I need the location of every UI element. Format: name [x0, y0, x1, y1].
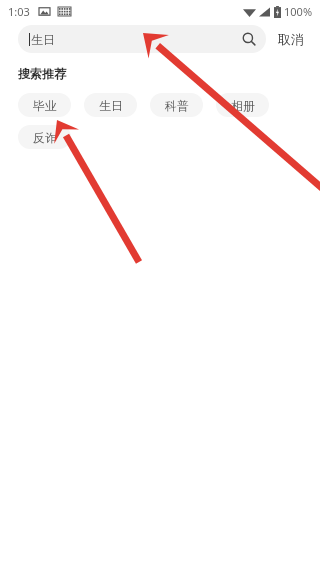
button[interactable]: 毕业 [18, 93, 71, 117]
staticText: 相册 [231, 98, 255, 113]
button[interactable]: 取消 [276, 27, 306, 51]
button[interactable]: 生日 [18, 25, 266, 53]
staticText: 1:03 [8, 4, 30, 19]
staticText: 搜索推荐 [18, 66, 66, 81]
button[interactable]: 相册 [216, 93, 269, 117]
staticText: 毕业 [33, 98, 57, 113]
staticText: 100% [284, 4, 313, 19]
staticText: 取消 [278, 31, 304, 47]
staticText: 生日 [31, 32, 241, 47]
staticText: 反诈 [33, 130, 57, 145]
staticText: 生日 [99, 98, 123, 113]
button[interactable]: 反诈 [18, 125, 71, 149]
button[interactable]: 科普 [150, 93, 203, 117]
staticText: 科普 [165, 98, 189, 113]
button[interactable]: 生日 [84, 93, 137, 117]
other: Search [241, 31, 257, 47]
